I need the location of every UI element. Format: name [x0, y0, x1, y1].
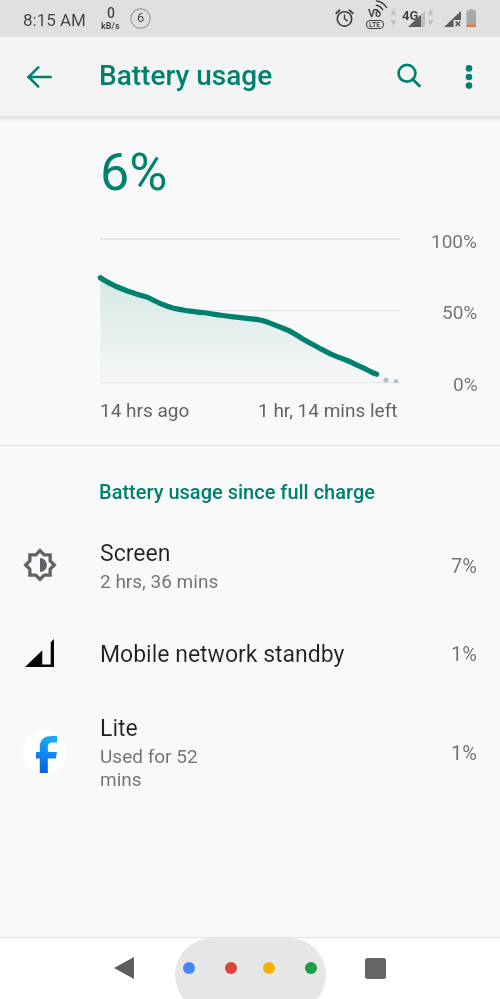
- button[interactable]: Recent apps: [351, 946, 399, 990]
- staticText: LTE: [369, 21, 381, 28]
- staticText: 2 hrs, 36 mins: [100, 570, 219, 592]
- staticText: 4G: [402, 8, 419, 23]
- button[interactable]: Assistant: [175, 938, 326, 999]
- button[interactable]: Screen: [0, 522, 500, 597]
- staticText: 14 hrs ago: [100, 399, 190, 421]
- staticText: 1%: [451, 741, 477, 764]
- staticText: 0%: [453, 373, 478, 395]
- button[interactable]: Search: [386, 53, 434, 101]
- button[interactable]: Mobile network standby: [0, 610, 500, 680]
- button[interactable]: More options: [445, 53, 493, 101]
- staticText: Mobile network standby: [100, 641, 345, 668]
- staticText: 50%: [442, 301, 478, 323]
- button[interactable]: Lite: [0, 700, 500, 795]
- staticText: Lite: [100, 715, 138, 742]
- staticText: 1%: [451, 642, 477, 665]
- staticText: 100%: [431, 230, 477, 252]
- staticText: 7%: [451, 554, 477, 577]
- button[interactable]: Back: [100, 946, 148, 990]
- staticText: Used for 52: [100, 745, 198, 767]
- staticText: 1 hr, 14 mins left: [258, 399, 398, 421]
- staticText: 0: [107, 5, 115, 21]
- staticText: Screen: [100, 540, 171, 567]
- staticText: 6: [137, 10, 145, 25]
- staticText: 6%: [100, 142, 168, 203]
- staticText: kB/s: [101, 21, 120, 32]
- staticText: Battery usage: [99, 59, 273, 92]
- staticText: 8:15 AM: [23, 10, 86, 30]
- staticText: Vo: [368, 7, 382, 20]
- staticText: mins: [100, 768, 142, 790]
- staticText: Battery usage since full charge: [99, 480, 375, 503]
- button[interactable]: Navigate up: [16, 53, 64, 101]
